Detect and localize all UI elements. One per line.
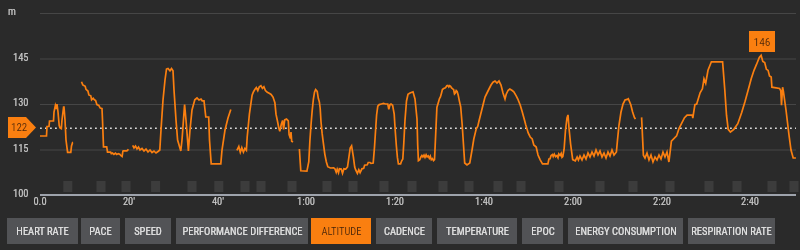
staticText: 122 [11,121,28,134]
staticText: HEART RATE [16,225,69,237]
staticText: 40' [202,195,234,207]
button[interactable]: PERFORMANCE DIFFERENCE [176,218,308,244]
staticText: TEMPERATURE [446,225,509,237]
button[interactable]: PACE [81,218,120,244]
staticText: 2:00 [557,195,589,207]
button[interactable]: RESPIRATION RATE [688,218,775,244]
button[interactable]: ALTITUDE [311,218,371,244]
staticText: 130 [13,96,29,108]
staticText: 0.0 [24,195,56,207]
staticText: SPEED [134,225,162,237]
staticText: 115 [13,142,29,154]
staticText: 100 [13,187,29,199]
staticText: PERFORMANCE DIFFERENCE [182,225,303,237]
staticText: CADENCE [384,225,425,237]
staticText: PACE [89,225,112,237]
staticText: 1:00 [290,195,322,207]
staticText: 20' [113,195,145,207]
staticText: ENERGY CONSUMPTION [575,225,677,237]
button[interactable]: SPEED [125,218,171,244]
staticText: RESPIRATION RATE [691,225,772,237]
staticText: EPOC [531,225,555,237]
staticText: ALTITUDE [321,225,362,237]
button[interactable]: HEART RATE [7,218,78,244]
staticText: 1:20 [379,195,411,207]
staticText: m [8,5,16,17]
staticText: 146 [753,35,771,48]
staticText: 2:40 [734,195,766,207]
staticText: 145 [13,51,29,63]
staticText: 1:40 [468,195,500,207]
button[interactable]: TEMPERATURE [437,218,517,244]
button[interactable]: EPOC [522,218,563,244]
staticText: 2:20 [646,195,678,207]
button[interactable]: CADENCE [376,218,432,244]
button[interactable]: ENERGY CONSUMPTION [568,218,683,244]
